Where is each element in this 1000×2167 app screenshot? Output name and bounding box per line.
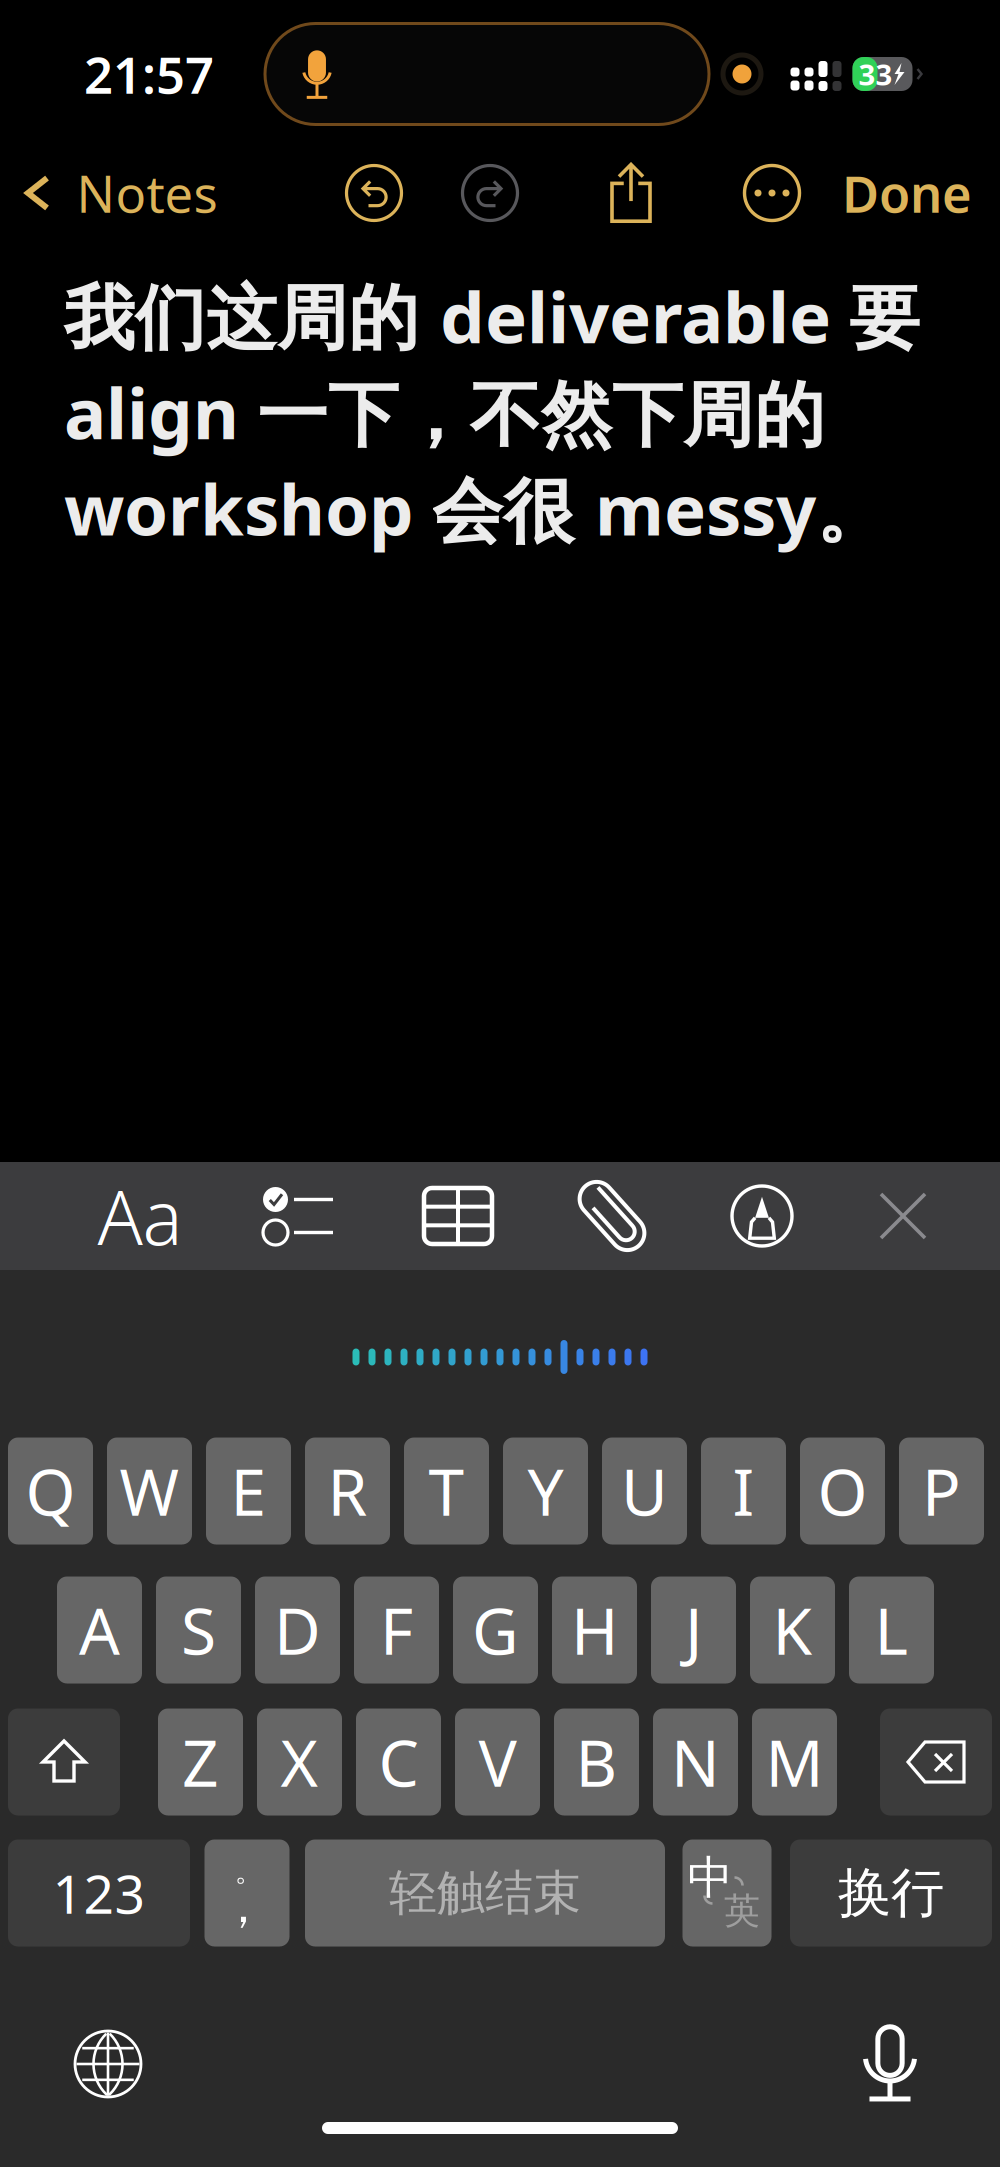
button[interactable]: A (57, 1576, 142, 1683)
button[interactable]: Q (8, 1437, 93, 1544)
staticText: G (472, 1587, 519, 1672)
staticText: V (478, 1719, 516, 1804)
staticText: E (230, 1448, 266, 1533)
button[interactable]: Notes (0, 145, 237, 241)
staticText: 21:57 (84, 40, 214, 108)
staticText: 中 (687, 1850, 732, 1906)
button[interactable]: B (554, 1708, 639, 1815)
button[interactable]: Switch Chinese English (682, 1839, 771, 1946)
staticText: C (378, 1719, 418, 1804)
button[interactable]: Attach (542, 1162, 682, 1270)
staticText: U (621, 1448, 668, 1533)
button[interactable]: U (602, 1437, 687, 1544)
button[interactable]: Z (158, 1708, 243, 1815)
staticText: N (671, 1719, 720, 1804)
staticText: K (772, 1587, 812, 1672)
button[interactable]: I (701, 1437, 786, 1544)
staticText: W (119, 1448, 179, 1533)
button[interactable]: J (651, 1576, 736, 1683)
staticText: 我们这周的 deliverable 要 align 一下，不然下周的 works… (64, 269, 920, 555)
staticText: 换行 (838, 1860, 944, 1926)
button[interactable]: Delete (880, 1708, 992, 1815)
staticText: Done (842, 159, 972, 227)
staticText: 123 (52, 1858, 145, 1928)
button[interactable]: M (752, 1708, 837, 1815)
staticText: Y (527, 1448, 563, 1533)
button[interactable]: Undo (332, 151, 415, 234)
staticText: Z (182, 1719, 219, 1804)
staticText: B (575, 1719, 617, 1804)
staticText: 。 (234, 1853, 263, 1889)
staticText: M (765, 1719, 823, 1804)
staticText: S (181, 1587, 216, 1672)
button[interactable]: V (455, 1708, 540, 1815)
staticText: I (732, 1448, 754, 1533)
button[interactable]: More (730, 151, 813, 234)
button[interactable]: Shift (8, 1708, 120, 1815)
staticText: R (327, 1448, 367, 1533)
staticText: Aa (97, 1166, 182, 1266)
button[interactable]: Checklist (228, 1162, 368, 1270)
button[interactable]: L (849, 1576, 934, 1683)
button[interactable]: Redo (448, 151, 531, 234)
staticText: X (280, 1719, 318, 1804)
button[interactable]: 123 (8, 1839, 190, 1946)
button[interactable]: O (800, 1437, 885, 1544)
button[interactable]: Done (824, 145, 990, 241)
staticText: 轻触结束 (389, 1863, 581, 1922)
button[interactable]: Y (503, 1437, 588, 1544)
staticText: Q (25, 1448, 75, 1533)
staticText: P (922, 1448, 961, 1533)
staticText: Notes (76, 159, 217, 227)
button[interactable]: Close (833, 1162, 973, 1270)
button[interactable]: Format (70, 1162, 210, 1270)
button[interactable]: P (899, 1437, 984, 1544)
button[interactable]: 换行 (790, 1839, 992, 1946)
button[interactable]: C (356, 1708, 441, 1815)
staticText: 英 (724, 1889, 760, 1933)
button[interactable]: Share (592, 148, 670, 238)
button[interactable]: T (404, 1437, 489, 1544)
staticText: 33 (858, 54, 892, 93)
button[interactable]: K (750, 1576, 835, 1683)
button[interactable]: Switch keyboard (53, 2014, 163, 2114)
button[interactable]: X (257, 1708, 342, 1815)
staticText: L (874, 1587, 908, 1672)
staticText: D (274, 1587, 321, 1672)
button[interactable]: S (156, 1576, 241, 1683)
button[interactable]: G (453, 1576, 538, 1683)
button[interactable]: Table (388, 1162, 528, 1270)
button[interactable]: W (107, 1437, 192, 1544)
button[interactable]: N (653, 1708, 738, 1815)
staticText: T (428, 1448, 464, 1533)
staticText: O (817, 1448, 867, 1533)
staticText: A (79, 1587, 120, 1672)
button[interactable]: Comma (204, 1839, 289, 1946)
button[interactable]: D (255, 1576, 340, 1683)
button[interactable]: Dictation (835, 2014, 945, 2114)
button[interactable]: R (305, 1437, 390, 1544)
staticText: J (685, 1587, 702, 1672)
button[interactable]: E (206, 1437, 291, 1544)
button[interactable]: 轻触结束 (305, 1839, 665, 1946)
button[interactable]: F (354, 1576, 439, 1683)
button[interactable]: Markup (692, 1162, 832, 1270)
staticText: ， (220, 1879, 265, 1935)
staticText: H (571, 1587, 618, 1672)
button[interactable]: H (552, 1576, 637, 1683)
staticText: F (380, 1587, 413, 1672)
